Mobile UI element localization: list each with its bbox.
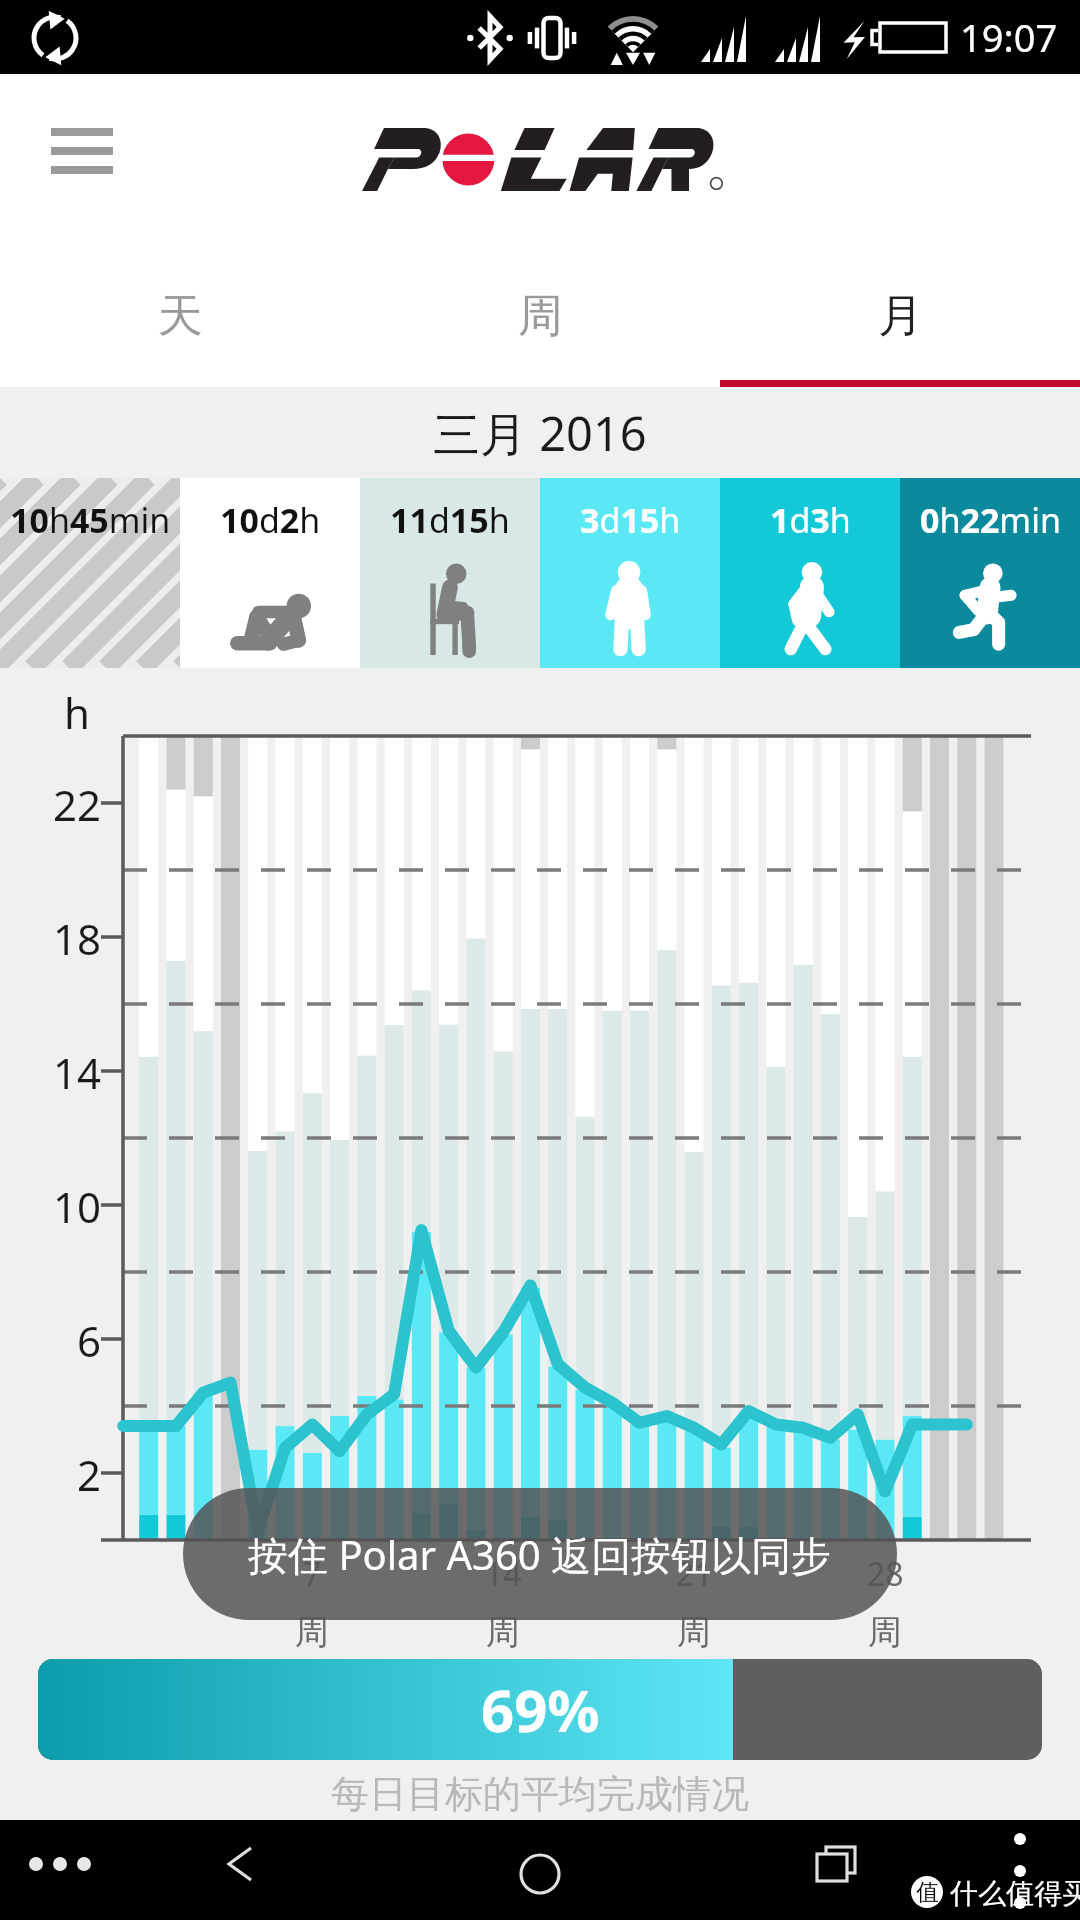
button[interactable]: 天 <box>0 230 360 387</box>
button[interactable]: 月 <box>720 230 1080 387</box>
button[interactable]: 69% <box>38 1659 1042 1760</box>
staticText: 周 <box>677 1611 711 1654</box>
button[interactable]: Recent apps <box>794 1834 880 1894</box>
button[interactable]: 1d3h <box>720 478 900 668</box>
staticText: 周 <box>295 1611 329 1654</box>
staticText: 14 <box>53 1044 102 1101</box>
staticText: 0h22min <box>920 497 1061 543</box>
staticText: 周 <box>518 288 563 345</box>
staticText: 每日目标的平均完成情况 <box>331 1770 749 1818</box>
staticText: 18 <box>53 910 102 967</box>
button[interactable]: 11d15h <box>360 478 540 668</box>
staticText: 10 <box>53 1178 102 1235</box>
staticText: 周 <box>486 1611 520 1654</box>
button[interactable]: 周 <box>360 230 720 387</box>
button[interactable]: 0h22min <box>900 478 1080 668</box>
staticText: 值 <box>916 1878 939 1907</box>
staticText: 天 <box>158 288 203 345</box>
staticText: 什么值得买 <box>943 1873 1080 1911</box>
button[interactable]: 3d15h <box>540 478 720 668</box>
staticText: 周 <box>868 1611 902 1654</box>
button[interactable]: Menu <box>18 1836 102 1892</box>
staticText: 1d3h <box>770 497 851 543</box>
staticText: 2 <box>77 1446 102 1503</box>
button[interactable]: Menu <box>44 116 120 188</box>
staticText: 14 <box>485 1552 522 1596</box>
staticText: 69% <box>481 1670 600 1749</box>
staticText: 6 <box>77 1312 102 1369</box>
button[interactable]: Back <box>196 1834 284 1894</box>
staticText: 三月 2016 <box>433 401 647 465</box>
staticText: 21 <box>676 1552 713 1596</box>
staticText: 10d2h <box>220 497 321 543</box>
button[interactable]: 10h45min <box>0 478 180 668</box>
staticText: h <box>64 684 90 741</box>
staticText: 28 <box>867 1552 904 1596</box>
staticText: 按住 Polar A360 返回按钮以同步 <box>248 1527 832 1582</box>
staticText: 22 <box>53 776 102 833</box>
staticText: 3d15h <box>580 497 681 543</box>
staticText: 19:07 <box>960 11 1058 63</box>
staticText: 11d15h <box>390 497 510 543</box>
staticText: 10h45min <box>10 497 171 543</box>
button[interactable]: Home <box>496 1830 584 1918</box>
staticText: 7 <box>303 1552 322 1596</box>
button[interactable]: 10d2h <box>180 478 360 668</box>
staticText: 月 <box>878 288 923 345</box>
